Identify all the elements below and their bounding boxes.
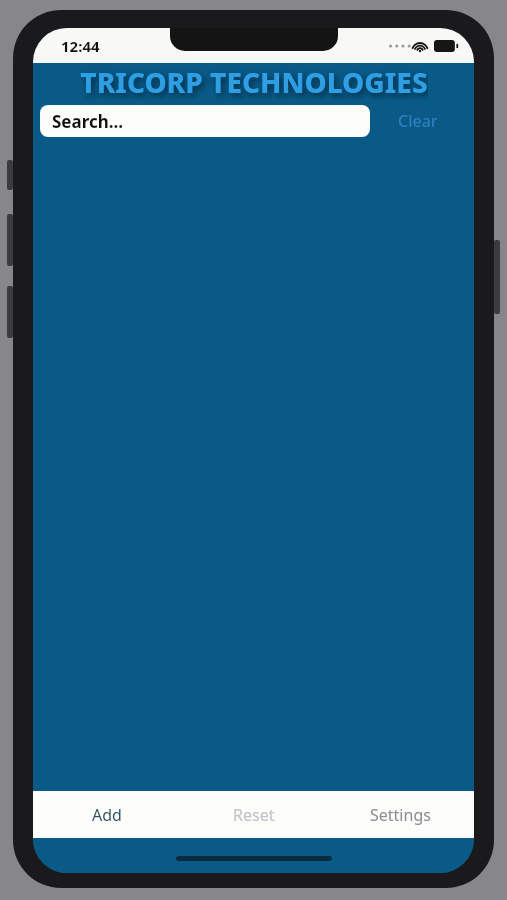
staticText: Clear	[398, 110, 438, 132]
other: Home indicator	[176, 856, 332, 861]
button[interactable]: Clear	[370, 100, 466, 142]
button[interactable]: Settings	[327, 791, 474, 838]
staticText: Search...	[52, 110, 124, 133]
staticText: Reset	[233, 804, 275, 826]
staticText: TRICORP TECHNOLOGIES	[80, 63, 428, 100]
button[interactable]: Add	[33, 791, 180, 838]
button[interactable]: Reset	[180, 791, 327, 838]
staticText: 12:44	[61, 36, 100, 56]
button[interactable]: Search...	[40, 105, 370, 137]
staticText: Settings	[370, 804, 431, 826]
staticText: Add	[92, 804, 122, 826]
